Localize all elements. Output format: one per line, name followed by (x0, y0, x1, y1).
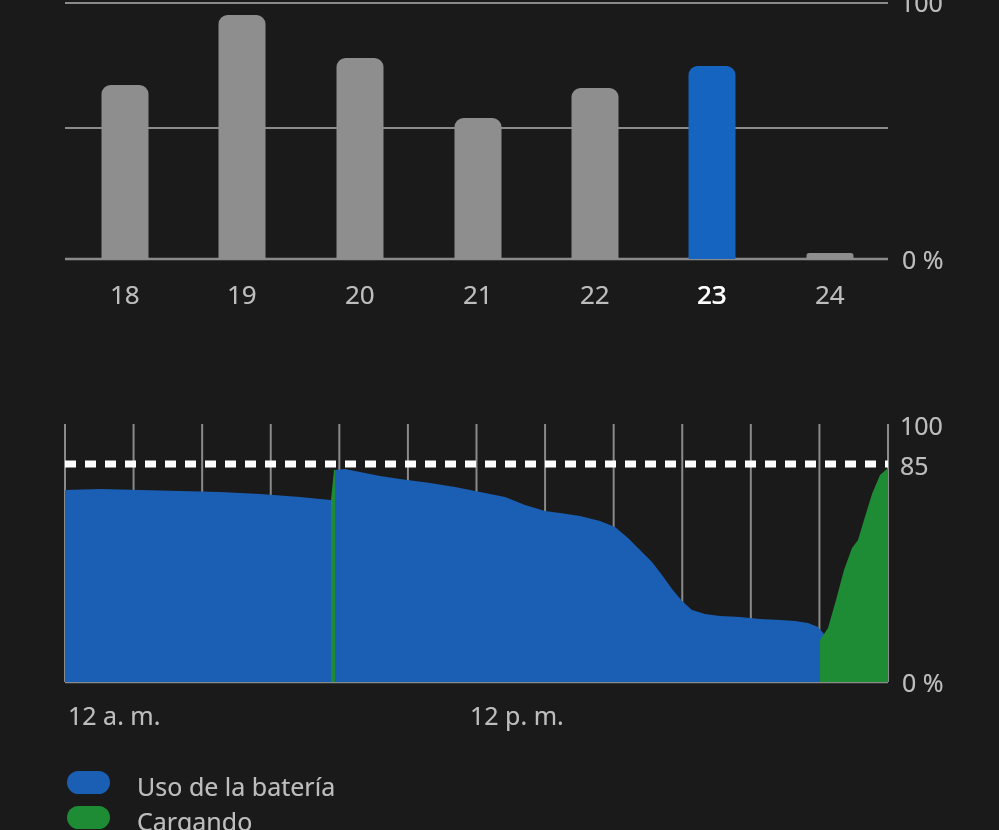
button[interactable]: Gráfico de uso de la batería (0, 0, 999, 830)
